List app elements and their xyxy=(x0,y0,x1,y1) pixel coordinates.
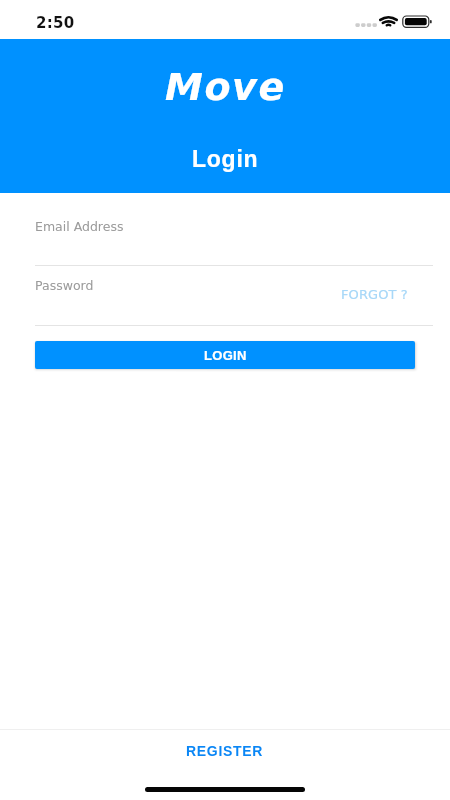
other: Signal, Wi-Fi and battery status xyxy=(0,0,450,39)
button[interactable]: LOGIN xyxy=(35,341,415,369)
staticText: Email Address xyxy=(35,219,124,234)
button[interactable]: REGISTER xyxy=(0,730,450,772)
staticText: LOGIN xyxy=(204,348,247,363)
staticText: 2:50 xyxy=(36,14,75,31)
staticText: Move xyxy=(165,65,286,109)
button[interactable]: Password xyxy=(35,266,433,326)
button[interactable]: Email Address xyxy=(35,206,433,266)
staticText: Password xyxy=(35,278,94,293)
staticText: REGISTER xyxy=(186,743,264,759)
staticText: FORGOT ? xyxy=(341,287,408,302)
staticText: Login xyxy=(192,146,259,172)
button[interactable]: FORGOT ? xyxy=(335,281,414,308)
